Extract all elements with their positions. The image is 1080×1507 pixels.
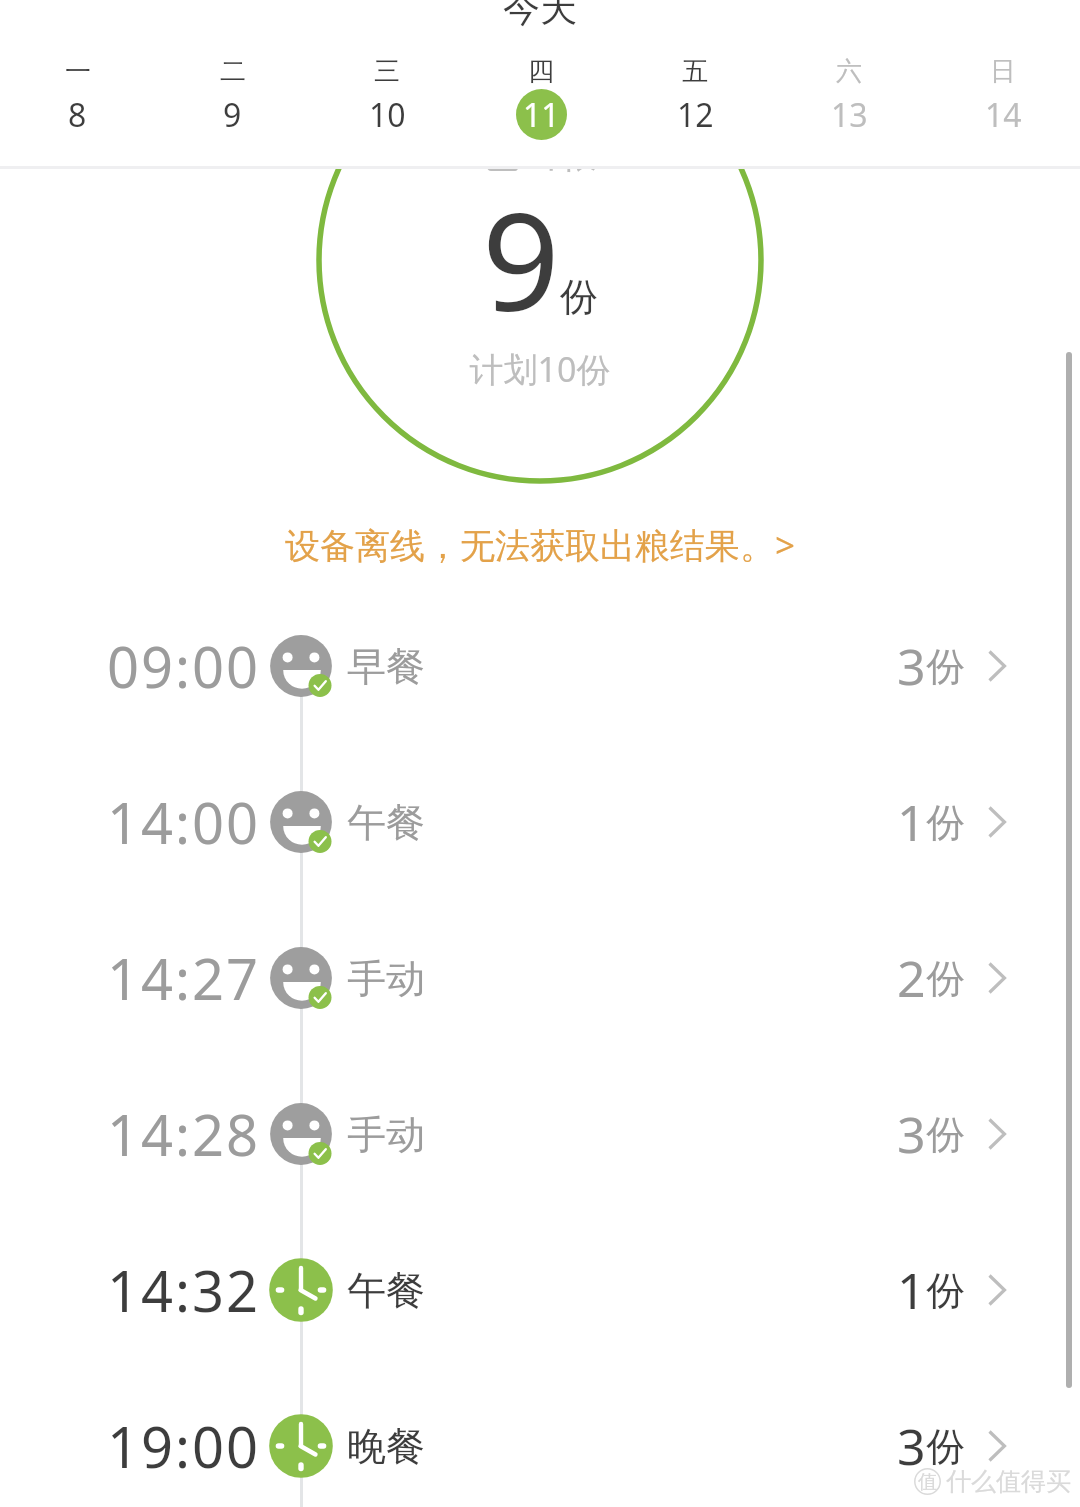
staticText: 19:00: [107, 1408, 261, 1484]
staticText: 二: [220, 55, 246, 88]
other: 查看详情: [988, 1430, 1006, 1462]
staticText: 手动: [347, 1110, 425, 1159]
button[interactable]: 设备离线，无法获取出粮结果。>: [0, 515, 1080, 575]
staticText: 今天: [0, 0, 1080, 32]
staticText: 份: [926, 642, 965, 691]
staticText: 14:28: [107, 1096, 261, 1172]
staticText: 14:27: [107, 940, 261, 1016]
staticText: 午餐: [347, 798, 425, 847]
staticText: 已出粮: [0, 130, 1080, 178]
staticText: 份: [560, 273, 598, 321]
staticText: 日: [990, 55, 1016, 88]
other: 查看详情: [988, 1118, 1006, 1150]
staticText: 一: [65, 55, 91, 88]
other: 查看详情: [988, 1274, 1006, 1306]
button[interactable]: 日: [926, 55, 1080, 155]
staticText: 六: [836, 55, 862, 88]
staticText: 1: [897, 1256, 926, 1324]
staticText: 11: [523, 93, 560, 137]
staticText: 3: [897, 1412, 926, 1480]
staticText: 份: [926, 954, 965, 1003]
button[interactable]: 14:00: [0, 744, 1080, 900]
staticText: 10: [369, 93, 406, 137]
staticText: 2: [897, 944, 926, 1012]
staticText: 份: [926, 1422, 965, 1471]
staticText: 14: [985, 93, 1022, 137]
staticText: 份: [926, 1266, 965, 1315]
button[interactable]: 14:28: [0, 1056, 1080, 1212]
staticText: 什么值得买: [946, 1466, 1071, 1497]
staticText: 午餐: [347, 1266, 425, 1315]
other: 查看详情: [988, 806, 1006, 838]
staticText: 8: [68, 93, 87, 137]
button[interactable]: 14:27: [0, 900, 1080, 1056]
staticText: 值: [918, 1470, 937, 1494]
button[interactable]: 14:32: [0, 1212, 1080, 1368]
staticText: 12: [677, 93, 714, 137]
staticText: 早餐: [347, 642, 425, 691]
staticText: 9: [223, 93, 242, 137]
staticText: 份: [926, 798, 965, 847]
staticText: 份: [926, 1110, 965, 1159]
staticText: 13: [831, 93, 868, 137]
button[interactable]: 一: [0, 55, 155, 155]
staticText: 手动: [347, 954, 425, 1003]
staticText: 14:00: [107, 784, 261, 860]
staticText: 09:00: [107, 628, 261, 704]
button[interactable]: 六: [772, 55, 926, 155]
staticText: 计划10份: [0, 346, 1080, 392]
button[interactable]: 二: [155, 55, 310, 155]
button[interactable]: 三: [310, 55, 464, 155]
staticText: 3: [897, 632, 926, 700]
staticText: 3: [897, 1100, 926, 1168]
staticText: 设备离线，无法获取出粮结果。>: [285, 521, 796, 569]
button[interactable]: 五: [618, 55, 772, 155]
button[interactable]: 09:00: [0, 588, 1080, 744]
other: 查看详情: [988, 650, 1006, 682]
staticText: 五: [682, 55, 708, 88]
staticText: 1: [897, 788, 926, 856]
staticText: 三: [374, 55, 400, 88]
button[interactable]: 19:00: [0, 1368, 1080, 1507]
staticText: 9: [482, 166, 560, 351]
staticText: 四: [528, 55, 554, 88]
other: 查看详情: [988, 962, 1006, 994]
button[interactable]: 四: [464, 55, 618, 155]
staticText: 14:32: [107, 1252, 261, 1328]
staticText: 晚餐: [347, 1422, 425, 1471]
